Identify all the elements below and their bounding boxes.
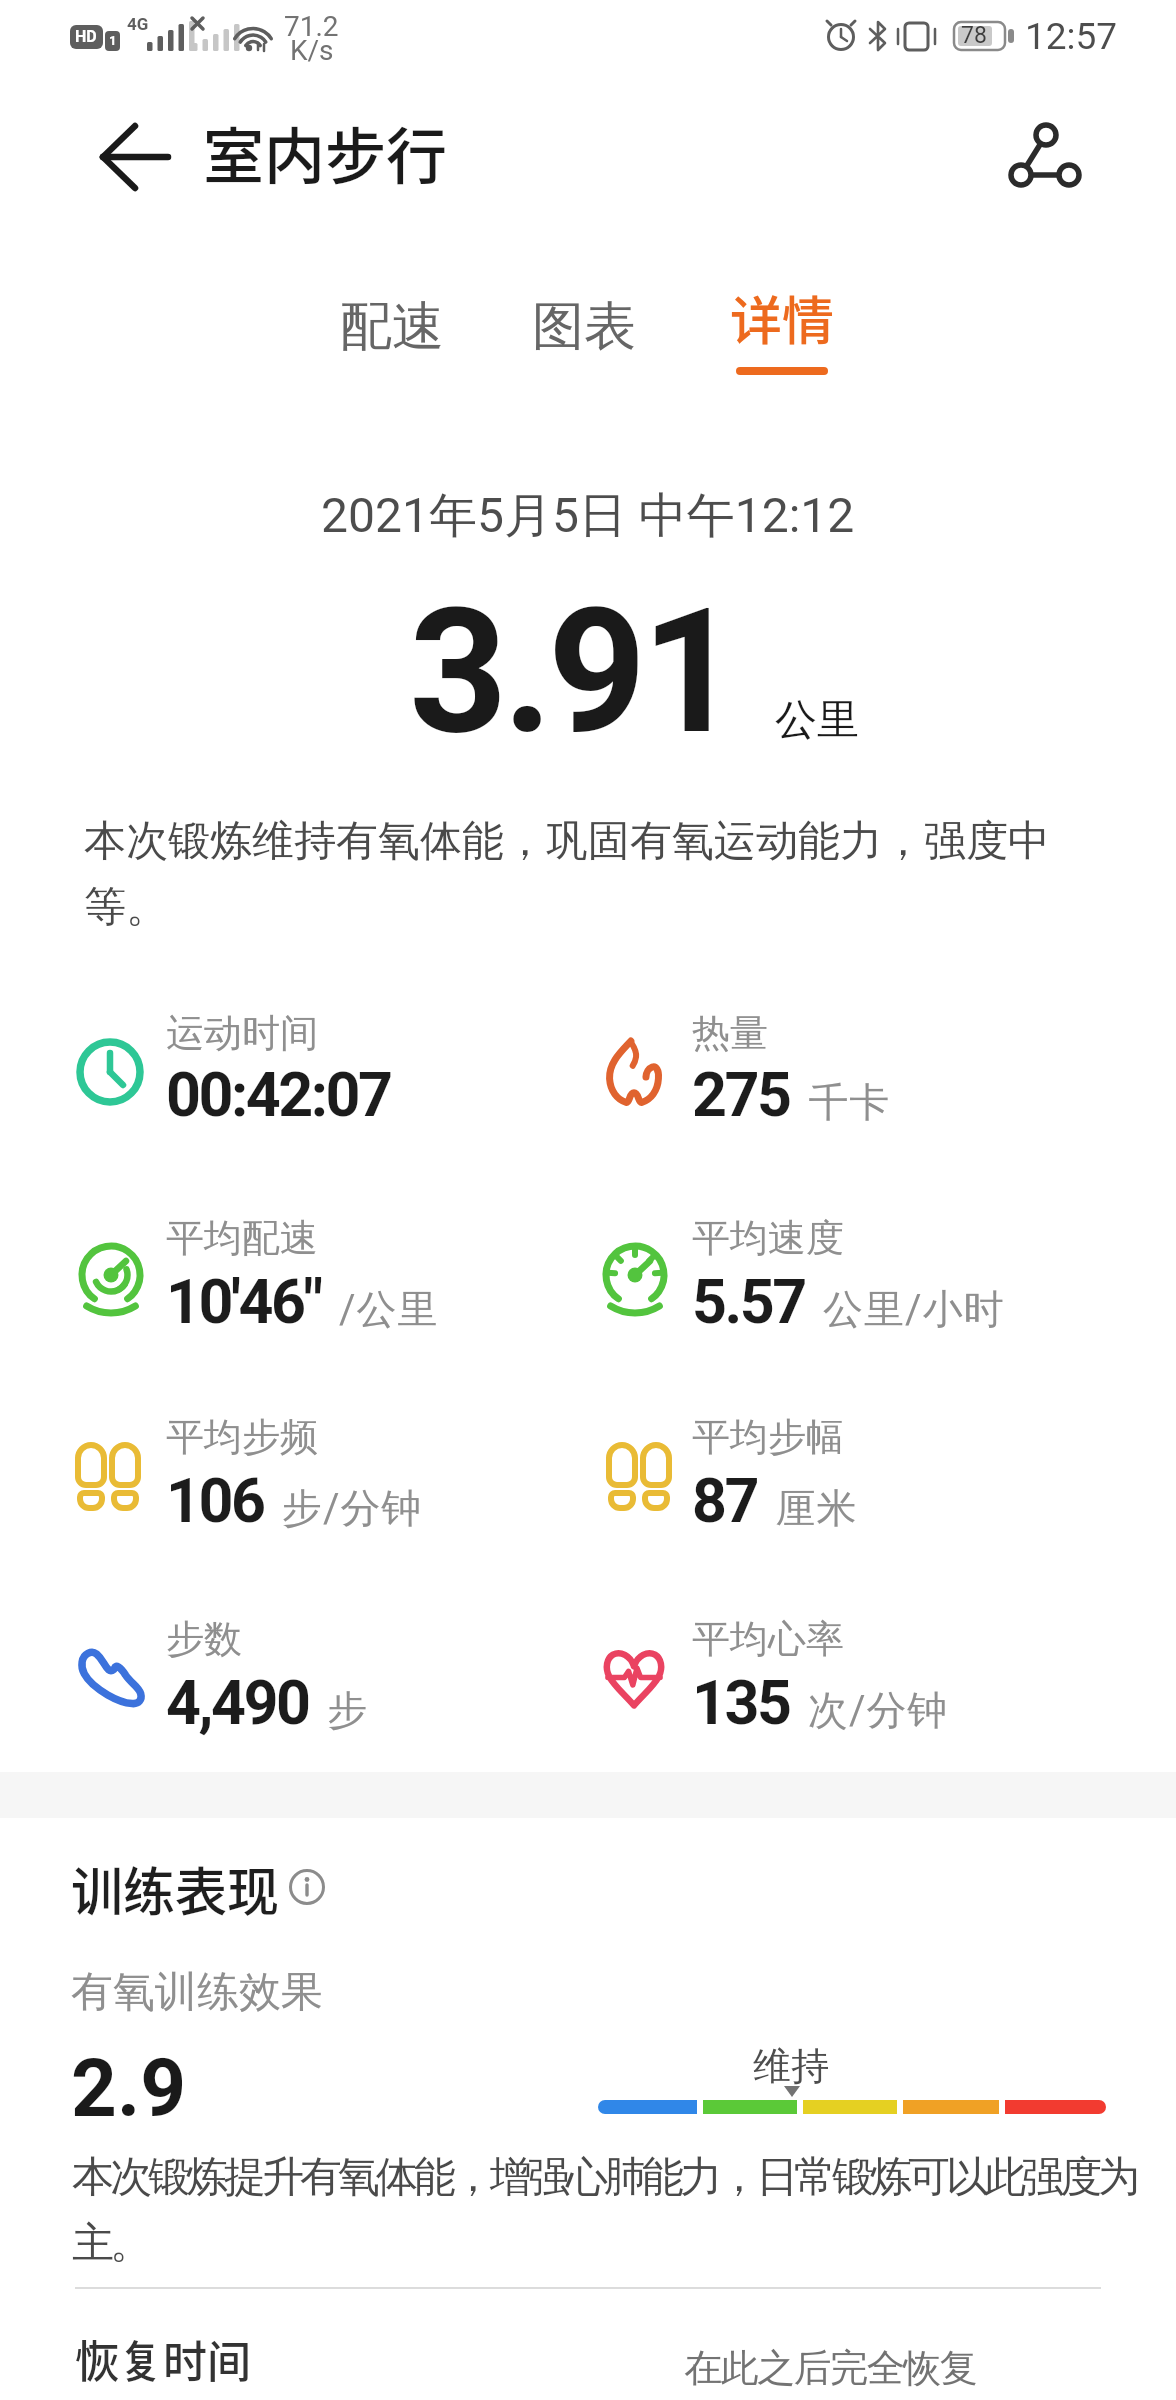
staticText: 本次锻炼提升有氧体能，增强心肺能力，日常锻炼可以此强度为主。 [72, 2151, 1152, 2269]
staticText: 本次锻炼维持有氧体能，巩固有氧运动能力，强度中等。 [84, 815, 1074, 933]
staticText: 12:57 [1025, 15, 1118, 58]
staticText: 1 [109, 33, 117, 48]
button[interactable] [524, 285, 644, 375]
button[interactable] [288, 1868, 326, 1906]
staticText: 10'46" [166, 1266, 321, 1337]
staticText: 平均步幅 [692, 1413, 844, 1461]
staticText: 热量 [692, 1009, 768, 1057]
button[interactable] [1000, 115, 1095, 200]
staticText: 步/分钟 [282, 1483, 423, 1533]
staticText: 运动时间 [166, 1009, 318, 1057]
staticText: 在此之后完全恢复 [685, 2344, 977, 2392]
staticText: 平均配速 [166, 1214, 318, 1262]
staticText: 公里 [775, 694, 859, 747]
staticText: HD [75, 27, 97, 46]
staticText: 87 [692, 1465, 757, 1536]
staticText: 平均心率 [692, 1615, 844, 1663]
staticText: 步 [327, 1685, 368, 1735]
staticText: 千卡 [808, 1077, 890, 1127]
staticText: 图表 [532, 294, 636, 360]
staticText: 步数 [166, 1615, 242, 1663]
staticText: 公里/小时 [823, 1284, 1005, 1334]
staticText: 有氧训练效果 [71, 1966, 323, 2019]
staticText: 维持 [753, 2042, 829, 2090]
staticText: 次/分钟 [808, 1685, 949, 1735]
staticText: 训练表现 [71, 1851, 280, 1926]
staticText: 275 [692, 1059, 790, 1130]
staticText: K/s [290, 34, 334, 67]
staticText: 平均步频 [166, 1413, 318, 1461]
staticText: 室内步行 [203, 108, 448, 196]
staticText: 2021年5月5日 中午12:12 [321, 486, 855, 546]
staticText: 78 [961, 22, 987, 49]
staticText: 106 [166, 1465, 264, 1536]
staticText: 2.9 [71, 2042, 187, 2136]
button[interactable] [80, 115, 185, 200]
staticText: 135 [692, 1667, 790, 1738]
staticText: 3.91 [409, 571, 736, 773]
staticText: 4G [127, 14, 149, 34]
button[interactable] [753, 2046, 833, 2090]
staticText: 配速 [340, 294, 444, 360]
staticText: 71.2 [284, 10, 339, 43]
staticText: 厘米 [775, 1483, 857, 1533]
staticText: 4,490 [166, 1667, 309, 1738]
staticText: 详情 [730, 280, 835, 355]
button[interactable] [722, 285, 842, 380]
staticText: 恢复时间 [75, 2327, 251, 2391]
button[interactable] [0, 2310, 1176, 2400]
button[interactable] [332, 285, 452, 375]
staticText: 5.57 [692, 1266, 805, 1337]
staticText: 00:42:07 [166, 1059, 391, 1130]
staticText: 平均速度 [692, 1214, 844, 1262]
staticText: /公里 [339, 1284, 439, 1334]
